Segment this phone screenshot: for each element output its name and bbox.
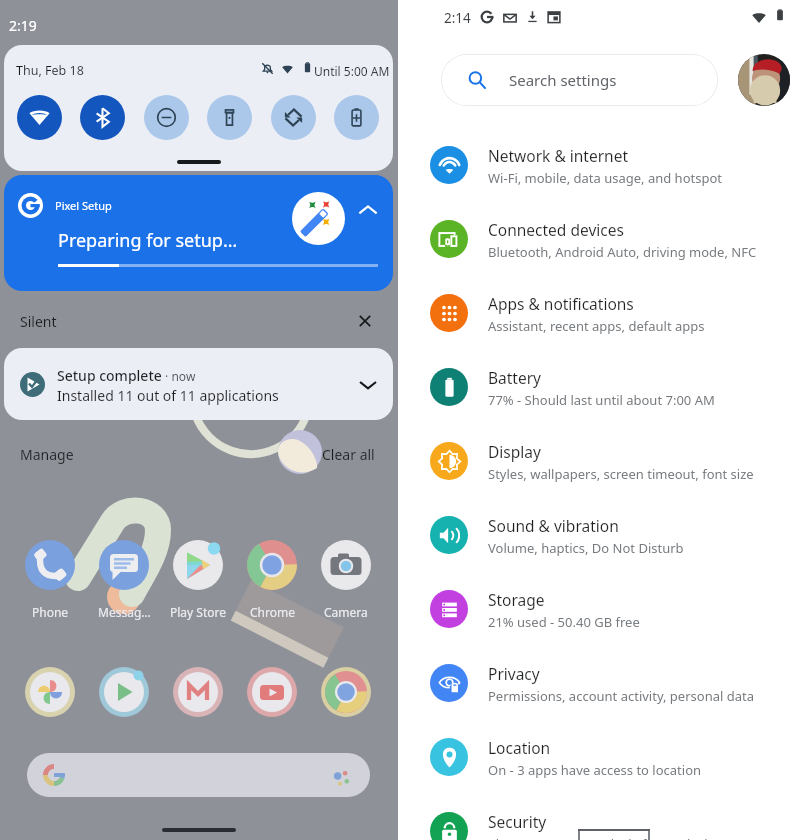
button[interactable]: Search settings (441, 54, 718, 106)
staticText: Wi-Fi, mobile, data usage, and hotspot (488, 169, 722, 187)
staticText: Security (488, 811, 547, 832)
staticText: Chrome (250, 604, 295, 620)
button[interactable]: Location (398, 720, 796, 794)
staticText: Apps & notifications (488, 293, 634, 314)
staticText: Battery (488, 367, 542, 388)
button[interactable]: Pixel Setup (4, 175, 393, 291)
button[interactable]: Silent (20, 312, 57, 331)
staticText: Assistant, recent apps, default apps (488, 317, 705, 335)
staticText: Volume, haptics, Do Not Disturb (488, 539, 684, 557)
staticText: 2:19 (9, 16, 37, 35)
staticText: Until 5:00 AM (314, 63, 390, 79)
button[interactable]: Storage (398, 572, 796, 646)
staticText: Connected devices (488, 219, 624, 240)
button[interactable]: Security (398, 794, 796, 840)
staticText: Search settings (509, 70, 617, 90)
staticText: Play Protect, screen lock, face unlock (488, 835, 712, 840)
staticText: Permissions, account activity, personal … (488, 687, 754, 705)
button[interactable]: Display (398, 424, 796, 498)
staticText: Thu, Feb 18 (16, 62, 84, 79)
staticText: Setup complete (57, 366, 162, 385)
button[interactable]: Quick setting toggle (334, 95, 379, 140)
staticText: Play Store (170, 604, 226, 620)
staticText: Privacy (488, 663, 540, 684)
button[interactable]: Quick setting toggle (144, 95, 189, 140)
button[interactable]: Network & internet (398, 128, 796, 202)
button[interactable]: Clear silent notifications (355, 311, 375, 331)
button[interactable]: Quick setting toggle (80, 95, 125, 140)
staticText: Pixel Setup (55, 198, 112, 213)
button[interactable]: Quick setting toggle (17, 95, 62, 140)
button[interactable]: Privacy (398, 646, 796, 720)
staticText: On - 3 apps have access to location (488, 761, 702, 779)
staticText: Messag… (98, 604, 151, 620)
staticText: Sound & vibration (488, 515, 619, 536)
button[interactable]: Quick setting toggle (207, 95, 252, 140)
staticText: Storage (488, 589, 545, 610)
staticText: Preparing for setup… (58, 228, 238, 253)
staticText: Installed 11 out of 11 applications (57, 386, 279, 405)
staticText: 77% - Should last until about 7:00 AM (488, 391, 715, 409)
staticText: · now (162, 368, 196, 384)
staticText: Network & internet (488, 145, 628, 166)
button[interactable]: Quick setting toggle (271, 95, 316, 140)
staticText: 21% used - 50.40 GB free (488, 613, 640, 631)
button[interactable]: Apps & notifications (398, 276, 796, 350)
button[interactable]: Sound & vibration (398, 498, 796, 572)
button[interactable]: Battery (398, 350, 796, 424)
button[interactable]: Account (738, 54, 790, 106)
button[interactable]: Manage (20, 445, 74, 464)
staticText: Location (488, 737, 551, 758)
staticText: Phone (32, 604, 69, 620)
staticText: Display (488, 441, 541, 462)
button[interactable]: Setup complete (4, 348, 393, 420)
staticText: 2:14 (444, 9, 471, 27)
button[interactable]: Clear all (322, 445, 375, 464)
button[interactable]: Expand notification (356, 373, 380, 397)
staticText: Bluetooth, Android Auto, driving mode, N… (488, 243, 757, 261)
button[interactable]: Connected devices (398, 202, 796, 276)
staticText: Camera (324, 604, 368, 620)
button[interactable]: Collapse notification (355, 197, 381, 223)
staticText: Styles, wallpapers, screen timeout, font… (488, 465, 754, 483)
